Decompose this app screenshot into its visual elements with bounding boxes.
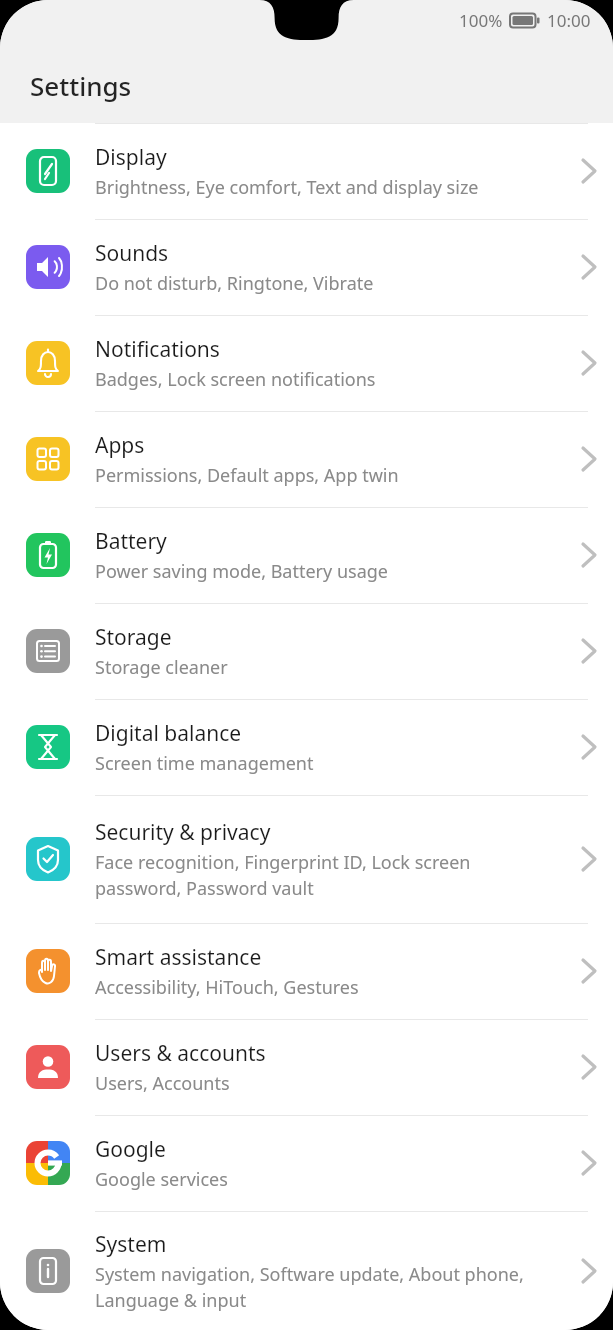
button[interactable]: Battery (0, 507, 613, 603)
staticText: Power saving mode, Battery usage (95, 559, 388, 584)
staticText: Google (95, 1135, 166, 1164)
staticText: Settings (30, 68, 132, 103)
button[interactable]: Sounds (0, 219, 613, 315)
staticText: Storage (95, 623, 172, 652)
button[interactable]: Google (0, 1115, 613, 1211)
staticText: Screen time management (95, 751, 314, 776)
staticText: 10:00 (547, 9, 591, 32)
staticText: Do not disturb, Ringtone, Vibrate (95, 271, 374, 296)
staticText: Permissions, Default apps, App twin (95, 463, 399, 488)
staticText: Users & accounts (95, 1039, 266, 1068)
staticText: Face recognition, Fingerprint ID, Lock s… (95, 850, 555, 900)
staticText: Digital balance (95, 719, 242, 748)
button[interactable]: Users & accounts (0, 1019, 613, 1115)
staticText: 100% (459, 9, 503, 32)
button[interactable]: Digital balance (0, 699, 613, 795)
staticText: Badges, Lock screen notifications (95, 367, 376, 392)
staticText: System (95, 1230, 167, 1259)
button[interactable]: Storage (0, 603, 613, 699)
staticText: Security & privacy (95, 818, 271, 847)
staticText: Notifications (95, 335, 220, 364)
staticText: Accessibility, HiTouch, Gestures (95, 975, 359, 1000)
button[interactable]: System (0, 1211, 613, 1330)
staticText: Apps (95, 431, 145, 460)
staticText: Battery (95, 527, 167, 556)
staticText: Brightness, Eye comfort, Text and displa… (95, 175, 479, 200)
staticText: Storage cleaner (95, 655, 228, 680)
staticText: Google services (95, 1167, 228, 1192)
button[interactable]: Security & privacy (0, 795, 613, 923)
button[interactable]: Notifications (0, 315, 613, 411)
staticText: Display (95, 143, 167, 172)
staticText: System navigation, Software update, Abou… (95, 1262, 555, 1312)
staticText: Smart assistance (95, 943, 262, 972)
staticText: Sounds (95, 239, 169, 268)
button[interactable]: Smart assistance (0, 923, 613, 1019)
button[interactable]: Display (0, 123, 613, 219)
staticText: Users, Accounts (95, 1071, 230, 1096)
button[interactable]: Apps (0, 411, 613, 507)
